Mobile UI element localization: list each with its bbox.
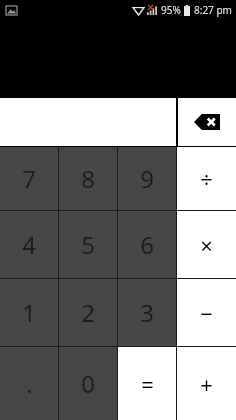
- staticText: +: [200, 369, 213, 399]
- staticText: 5: [81, 228, 95, 261]
- staticText: ÷: [200, 164, 213, 194]
- button[interactable]: 3: [118, 279, 176, 346]
- button[interactable]: 2: [59, 279, 117, 346]
- button[interactable]: 6: [118, 211, 176, 278]
- staticText: 3: [140, 296, 154, 329]
- staticText: 8:27 pm: [194, 3, 232, 17]
- staticText: 7: [22, 162, 36, 195]
- button[interactable]: 5: [59, 211, 117, 278]
- staticText: 4: [22, 228, 36, 261]
- button[interactable]: −: [177, 279, 236, 346]
- staticText: =: [141, 369, 154, 399]
- button[interactable]: 9: [118, 147, 176, 210]
- staticText: 95%: [161, 3, 181, 17]
- staticText: 0: [81, 367, 95, 400]
- button[interactable]: +: [177, 347, 236, 420]
- button[interactable]: ×: [177, 211, 236, 278]
- button[interactable]: 7: [0, 147, 58, 210]
- button[interactable]: Backspace: [178, 98, 236, 146]
- button[interactable]: =: [118, 347, 176, 420]
- button[interactable]: ÷: [177, 147, 236, 210]
- staticText: 2: [81, 296, 95, 329]
- staticText: 9: [140, 162, 154, 195]
- staticText: 6: [140, 228, 154, 261]
- staticText: ×: [200, 230, 213, 260]
- button[interactable]: 1: [0, 279, 58, 346]
- staticText: .: [26, 367, 33, 400]
- staticText: 1: [22, 296, 36, 329]
- button[interactable]: 8: [59, 147, 117, 210]
- staticText: 8: [81, 162, 95, 195]
- button[interactable]: 0: [59, 347, 117, 420]
- button[interactable]: 4: [0, 211, 58, 278]
- staticText: −: [200, 298, 213, 328]
